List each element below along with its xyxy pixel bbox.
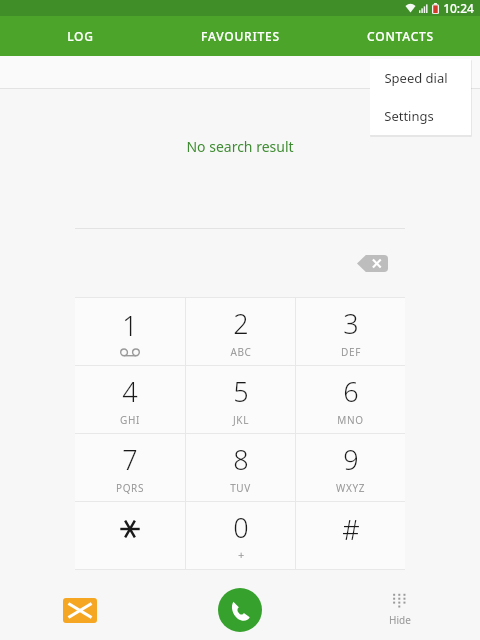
staticText: Speed dial — [384, 69, 448, 87]
button[interactable]: Speed dial — [370, 59, 471, 97]
button[interactable]: 7 — [75, 434, 185, 501]
staticText: LOG — [67, 28, 94, 44]
button[interactable]: Settings — [370, 97, 471, 135]
button[interactable]: 3 — [296, 298, 405, 365]
staticText: No search result — [186, 137, 294, 156]
staticText: 1 — [122, 307, 138, 344]
staticText: 7 — [122, 441, 138, 478]
staticText: Settings — [384, 107, 434, 125]
staticText: 5 — [233, 373, 249, 410]
staticText: 10:24 — [443, 0, 474, 16]
staticText: 8 — [233, 441, 249, 478]
staticText: 9 — [343, 441, 359, 478]
button[interactable]: Backspace — [350, 246, 394, 280]
staticText: 4 — [122, 373, 138, 410]
button[interactable]: 1 — [75, 298, 185, 365]
staticText: FAVOURITES — [201, 28, 280, 44]
button[interactable] — [75, 502, 185, 569]
button[interactable]: 8 — [186, 434, 295, 501]
staticText: DEF — [341, 345, 361, 359]
button[interactable]: Message — [54, 584, 106, 636]
button[interactable] — [0, 56, 480, 88]
staticText: GHI — [120, 413, 140, 427]
staticText: CONTACTS — [367, 28, 434, 44]
staticText: 0 — [233, 509, 249, 546]
staticText: 6 — [343, 373, 359, 410]
button[interactable]: 0 — [186, 502, 295, 569]
button[interactable]: 9 — [296, 434, 405, 501]
staticText: TUV — [230, 481, 251, 495]
button[interactable]: CONTACTS — [320, 16, 480, 56]
staticText: MNO — [337, 413, 364, 427]
button[interactable]: LOG — [0, 16, 160, 56]
staticText: PQRS — [116, 481, 144, 495]
button[interactable]: 2 — [186, 298, 295, 365]
staticText: 3 — [343, 305, 359, 342]
button[interactable]: 5 — [186, 366, 295, 433]
staticText: WXYZ — [336, 481, 365, 495]
button[interactable]: Call — [218, 588, 262, 632]
staticText: + — [238, 547, 245, 562]
button[interactable]: Hide keypad — [374, 588, 426, 632]
staticText: 2 — [233, 305, 249, 342]
staticText: ABC — [230, 345, 252, 359]
staticText: JKL — [233, 413, 249, 427]
button[interactable]: FAVOURITES — [160, 16, 320, 56]
button[interactable]: # — [296, 502, 405, 569]
button[interactable]: 6 — [296, 366, 405, 433]
staticText: # — [342, 511, 360, 548]
button[interactable]: 4 — [75, 366, 185, 433]
staticText: Hide — [389, 613, 411, 627]
